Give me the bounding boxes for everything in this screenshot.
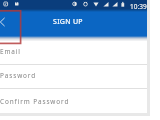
staticText: Password [0, 71, 37, 80]
staticText: SIGN UP [53, 17, 83, 27]
button[interactable]: Confirm Password [0, 89, 147, 113]
button[interactable]: Password [0, 65, 147, 89]
button[interactable]: Back [0, 14, 6, 30]
button[interactable]: Email [0, 41, 147, 65]
staticText: Confirm Password [0, 97, 70, 106]
staticText: 10:39 [130, 2, 147, 11]
staticText: Email [0, 47, 21, 56]
